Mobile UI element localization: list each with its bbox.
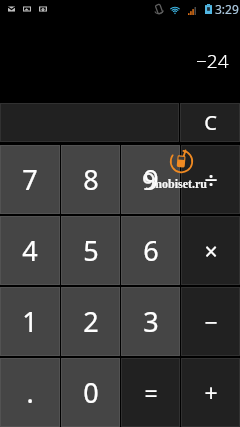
- button[interactable]: 4: [0, 216, 60, 285]
- button[interactable]: =: [121, 358, 180, 427]
- button[interactable]: ×: [181, 216, 240, 285]
- staticText: ÷: [204, 164, 218, 195]
- staticText: 6: [143, 232, 159, 269]
- staticText: +: [204, 377, 218, 408]
- staticText: 9: [143, 161, 159, 198]
- button[interactable]: 6: [121, 216, 180, 285]
- button[interactable]: +: [181, 358, 240, 427]
- button[interactable]: .: [0, 358, 60, 427]
- button[interactable]: 1: [0, 287, 60, 356]
- staticText: ×: [204, 235, 218, 266]
- staticText: −: [204, 306, 218, 337]
- staticText: 9: [142, 164, 156, 197]
- button[interactable]: 2: [61, 287, 120, 356]
- button[interactable]: 3: [121, 287, 180, 356]
- staticText: 3: [143, 303, 159, 340]
- button[interactable]: 0: [61, 358, 120, 427]
- button[interactable]: C: [180, 103, 240, 142]
- staticText: 5: [83, 232, 99, 269]
- button[interactable]: −: [181, 287, 240, 356]
- staticText: 8: [83, 161, 99, 198]
- button[interactable]: 9: [121, 145, 180, 214]
- staticText: =: [144, 377, 158, 408]
- button[interactable]: 5: [61, 216, 120, 285]
- staticText: 7: [22, 161, 38, 198]
- button[interactable]: 8: [61, 145, 120, 214]
- staticText: 0: [83, 374, 99, 411]
- staticText: C: [204, 109, 217, 136]
- button[interactable]: 7: [0, 145, 60, 214]
- button[interactable]: ÷: [181, 145, 240, 214]
- staticText: 1: [22, 303, 38, 340]
- button[interactable]: History: [0, 103, 179, 142]
- staticText: 3:29: [215, 1, 239, 17]
- staticText: mobiset.ru: [152, 177, 207, 190]
- staticText: 4: [22, 232, 38, 269]
- staticText: −24: [196, 48, 229, 74]
- staticText: 2: [83, 303, 99, 340]
- staticText: .: [26, 374, 34, 411]
